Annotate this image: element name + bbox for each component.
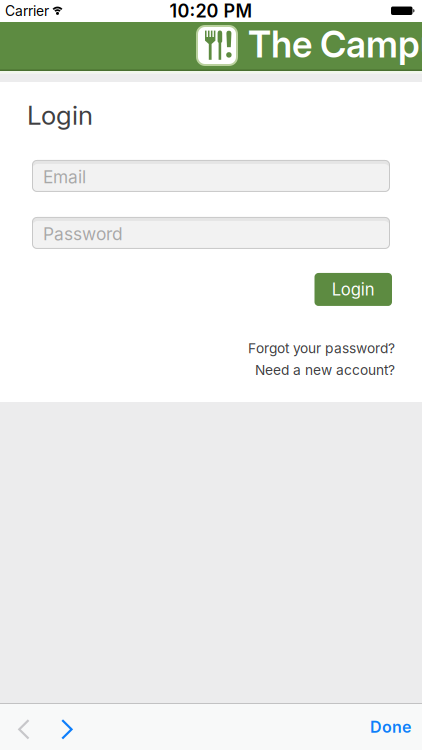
button[interactable]: Login: [314, 273, 392, 306]
secureTextField[interactable]: Password: [32, 217, 390, 249]
button[interactable]: Forgot your password?: [248, 340, 395, 357]
staticText: The Campus: [248, 22, 422, 66]
button[interactable]: Forward: [49, 705, 85, 749]
staticText: 10:20 PM: [169, 0, 252, 22]
staticText: Email: [43, 166, 86, 187]
button[interactable]: Need a new account?: [255, 362, 395, 378]
staticText: Login: [332, 279, 375, 300]
staticText: Done: [370, 717, 411, 737]
staticText: Need a new account?: [255, 362, 395, 378]
staticText: Password: [43, 223, 123, 244]
staticText: Carrier: [5, 3, 49, 19]
textField[interactable]: Email: [32, 160, 390, 192]
staticText: Forgot your password?: [248, 340, 395, 357]
button[interactable]: Back: [6, 705, 42, 749]
button[interactable]: Done: [370, 705, 411, 749]
staticText: Login: [27, 99, 93, 131]
